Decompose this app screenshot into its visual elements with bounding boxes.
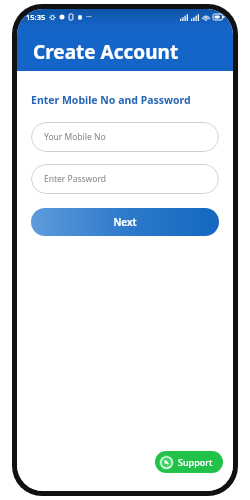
staticText: Enter Password — [44, 173, 107, 185]
other: WhatsApp Support — [159, 455, 174, 470]
button[interactable]: WhatsApp Support — [155, 451, 223, 473]
staticText: 15:35 — [26, 12, 46, 22]
button[interactable]: Next — [31, 208, 219, 236]
staticText: Support — [178, 456, 213, 468]
staticText: Create Account — [33, 39, 179, 65]
button[interactable]: Your Mobile No — [31, 122, 219, 152]
staticText: Your Mobile No — [44, 131, 106, 143]
staticText: Next — [113, 215, 137, 229]
button[interactable]: Enter Password — [31, 164, 219, 194]
staticText: Enter Mobile No and Password — [31, 93, 191, 107]
staticText: ··· — [86, 12, 92, 22]
